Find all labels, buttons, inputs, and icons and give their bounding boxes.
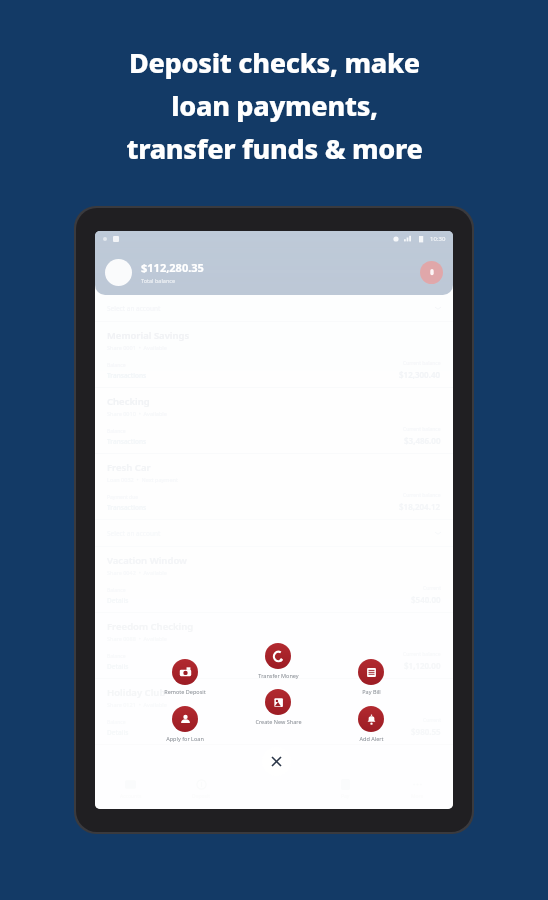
button[interactable]: Holiday Club bbox=[95, 679, 453, 744]
staticText: $112,280.35 bbox=[141, 260, 204, 275]
staticText: Pay Bill bbox=[362, 688, 381, 695]
button[interactable]: Accounts bbox=[95, 769, 166, 809]
staticText: Details bbox=[107, 596, 129, 605]
staticText: transfer funds & more bbox=[126, 130, 423, 167]
staticText: Remote Deposit bbox=[164, 688, 206, 695]
button[interactable]: Profile bbox=[105, 259, 132, 286]
staticText: 10:30 bbox=[430, 235, 446, 243]
staticText: $18,204.12 bbox=[399, 501, 441, 512]
staticText: Details bbox=[107, 728, 129, 737]
button[interactable]: Pay Bill bbox=[338, 659, 404, 695]
staticText: Fresh Car bbox=[107, 461, 151, 474]
staticText: $3,486.00 bbox=[404, 435, 441, 446]
staticText: Transfer Money bbox=[258, 672, 299, 679]
staticText: Create New Share bbox=[255, 718, 302, 725]
staticText: Deposit checks, make bbox=[129, 44, 420, 81]
staticText: $540.00 bbox=[411, 594, 441, 605]
staticText: Memorial Savings bbox=[107, 329, 190, 342]
staticText: Transactions bbox=[107, 503, 147, 512]
button[interactable]: Freedom Checking bbox=[95, 613, 453, 678]
button[interactable]: More bbox=[381, 769, 453, 809]
button[interactable]: Transfer Money bbox=[245, 643, 311, 679]
button[interactable]: Create New Share bbox=[245, 689, 311, 725]
button[interactable]: Apply for Loan bbox=[152, 706, 218, 742]
staticText: Freedom Checking bbox=[107, 620, 194, 633]
button[interactable]: Close menu bbox=[262, 747, 291, 776]
staticText: $12,300.40 bbox=[399, 369, 441, 380]
button[interactable]: Quick actions bbox=[420, 261, 443, 284]
staticText: Details bbox=[107, 662, 129, 671]
staticText: Apply for Loan bbox=[166, 735, 204, 742]
staticText: Transactions bbox=[107, 371, 147, 380]
button[interactable]: Remote Deposit bbox=[152, 659, 218, 695]
staticText: $1,120.00 bbox=[404, 660, 441, 671]
staticText: Holiday Club bbox=[107, 686, 166, 699]
staticText: Vacation Window bbox=[107, 554, 187, 567]
staticText: Checking bbox=[107, 395, 150, 408]
staticText: Total balance bbox=[141, 277, 176, 284]
staticText: Add Alert bbox=[359, 735, 384, 742]
staticText: $980.55 bbox=[411, 726, 441, 737]
button[interactable]: Add Alert bbox=[338, 706, 404, 742]
staticText: Transactions bbox=[107, 437, 147, 446]
staticText: loan payments, bbox=[171, 87, 378, 124]
